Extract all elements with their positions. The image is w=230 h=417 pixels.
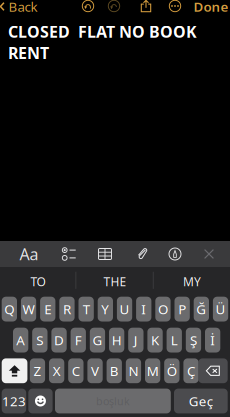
button[interactable]: Ü <box>213 297 228 321</box>
staticText: L <box>171 331 178 349</box>
staticText: Y <box>101 300 109 318</box>
button[interactable]: İ <box>205 328 220 352</box>
button[interactable]: THE <box>77 267 153 296</box>
staticText: O <box>158 300 168 318</box>
staticText: J <box>134 331 138 349</box>
staticText: K <box>151 331 159 349</box>
staticText: P <box>178 300 186 318</box>
staticText: boşluk <box>96 394 130 408</box>
staticText: A <box>16 331 25 349</box>
button[interactable]: Z <box>30 358 45 383</box>
staticText: Geç <box>189 392 213 410</box>
staticText: N <box>128 362 138 380</box>
button[interactable]: Attach file <box>132 244 152 263</box>
staticText: Ş <box>190 331 197 349</box>
button[interactable]: U <box>117 297 132 321</box>
staticText: Ü <box>215 300 225 318</box>
button[interactable]: Delete <box>198 358 228 383</box>
button[interactable]: L <box>167 328 182 352</box>
button[interactable]: O <box>155 297 171 321</box>
staticText: X <box>53 362 61 380</box>
button[interactable]: Emoji <box>28 389 53 413</box>
button[interactable]: Space <box>55 389 171 413</box>
button[interactable]: N <box>126 358 141 383</box>
button[interactable]: A <box>13 328 28 352</box>
button[interactable]: Undo <box>79 0 97 15</box>
staticText: THE <box>103 273 126 289</box>
button[interactable]: MY <box>154 267 230 296</box>
button[interactable]: Redo <box>105 0 123 15</box>
staticText: V <box>91 362 99 380</box>
button[interactable]: J <box>128 328 143 352</box>
button[interactable]: Text format <box>15 239 42 269</box>
staticText: İ <box>210 331 215 349</box>
button[interactable]: S <box>32 328 47 352</box>
button[interactable]: P <box>174 297 190 321</box>
button[interactable]: F <box>71 328 86 352</box>
button[interactable]: X <box>49 358 64 383</box>
staticText: W <box>22 300 34 318</box>
staticText: Aa <box>19 243 38 265</box>
button[interactable]: Ç <box>183 358 199 383</box>
staticText: TO <box>30 273 45 289</box>
button[interactable]: TO <box>0 267 76 296</box>
button[interactable]: D <box>51 328 67 352</box>
button[interactable]: G <box>90 328 105 352</box>
button[interactable]: Ş <box>186 328 201 352</box>
button[interactable]: Markup <box>165 244 184 263</box>
button[interactable]: H <box>109 328 124 352</box>
button[interactable]: R <box>59 297 75 321</box>
staticText: C <box>72 362 80 380</box>
button[interactable]: Checklist <box>59 245 79 263</box>
button[interactable]: Hide toolbar <box>200 245 218 263</box>
staticText: CLOSED FLAT NO BOOK RENT <box>8 21 197 63</box>
staticText: D <box>54 331 64 349</box>
button[interactable]: Table <box>95 245 114 263</box>
button[interactable]: Ğ <box>194 297 209 321</box>
staticText: M <box>147 362 159 380</box>
staticText: 123 <box>2 392 26 410</box>
staticText: Ç <box>187 362 195 380</box>
staticText: I <box>141 300 146 318</box>
button[interactable]: K <box>147 328 163 352</box>
button[interactable]: Share <box>137 0 154 15</box>
staticText: Back <box>8 0 37 15</box>
button[interactable]: T <box>78 297 94 321</box>
staticText: E <box>44 300 51 318</box>
staticText: U <box>119 300 129 318</box>
staticText: B <box>110 362 119 380</box>
button[interactable]: Go <box>174 389 228 413</box>
button[interactable]: Numbers <box>2 389 26 413</box>
staticText: F <box>75 331 82 349</box>
staticText: S <box>36 331 43 349</box>
button[interactable]: Y <box>98 297 113 321</box>
button[interactable]: Shift <box>2 358 27 383</box>
button[interactable]: Ö <box>164 358 179 383</box>
staticText: Ğ <box>196 300 206 318</box>
staticText: Done <box>193 0 228 15</box>
staticText: T <box>83 300 90 318</box>
button[interactable]: C <box>68 358 83 383</box>
staticText: R <box>63 300 71 318</box>
button[interactable]: W <box>21 297 36 321</box>
button[interactable]: Back <box>0 0 41 17</box>
button[interactable]: Q <box>2 297 17 321</box>
staticText: Ö <box>167 362 177 380</box>
button[interactable]: V <box>87 358 103 383</box>
staticText: G <box>92 331 102 349</box>
button[interactable]: More <box>166 0 184 15</box>
button[interactable]: B <box>107 358 122 383</box>
staticText: H <box>112 331 122 349</box>
button[interactable]: M <box>145 358 160 383</box>
staticText: Q <box>4 300 14 318</box>
staticText: MY <box>183 273 201 289</box>
button[interactable]: Done <box>189 0 230 17</box>
button[interactable]: E <box>40 297 55 321</box>
staticText: Z <box>33 362 41 380</box>
button[interactable]: I <box>136 297 151 321</box>
